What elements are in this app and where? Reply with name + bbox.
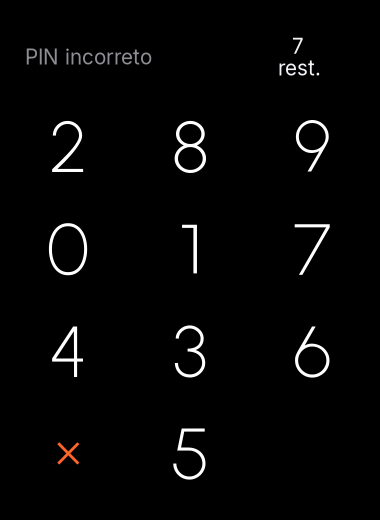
button[interactable]: 7: [251, 198, 373, 300]
staticText: 7: [293, 206, 331, 292]
staticText: rest.: [278, 55, 321, 80]
button[interactable]: 6: [251, 300, 373, 402]
staticText: 3: [173, 308, 208, 394]
staticText: 5: [171, 410, 210, 497]
staticText: 2: [49, 104, 87, 190]
staticText: 1: [179, 209, 206, 293]
staticText: 6: [293, 308, 331, 394]
button[interactable]: 5: [129, 402, 251, 504]
button[interactable]: 0: [7, 198, 129, 300]
button[interactable]: 4: [7, 300, 129, 402]
staticText: 4: [49, 308, 87, 394]
staticText: 7: [292, 34, 304, 59]
button[interactable]: Cancel: [7, 402, 129, 504]
button[interactable]: 2: [7, 96, 129, 198]
staticText: 9: [294, 104, 331, 190]
staticText: 0: [47, 206, 90, 292]
button[interactable]: 8: [129, 96, 251, 198]
staticText: 8: [172, 104, 209, 190]
button[interactable]: 1: [129, 198, 251, 300]
button[interactable]: 9: [251, 96, 373, 198]
staticText: PIN incorreto: [25, 44, 152, 69]
button[interactable]: 3: [129, 300, 251, 402]
